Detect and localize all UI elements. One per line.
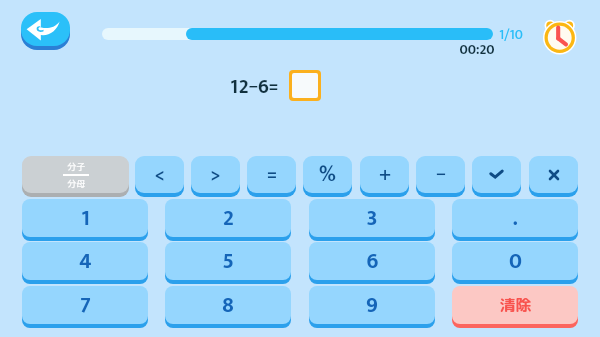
staticText: 4 <box>79 243 92 280</box>
staticText: − <box>436 157 446 192</box>
button[interactable]: . <box>452 199 578 241</box>
button[interactable]: Equals <box>247 156 296 197</box>
button[interactable]: 清除 <box>452 286 578 328</box>
staticText: 12−6= <box>230 70 278 103</box>
button[interactable]: Greater than <box>191 156 240 197</box>
button[interactable]: 3 <box>309 199 435 241</box>
button[interactable]: 6 <box>309 242 435 284</box>
button[interactable]: Correct <box>472 156 521 197</box>
staticText: . <box>512 200 518 237</box>
staticText: 1 <box>81 200 90 237</box>
button[interactable]: 0 <box>452 242 578 284</box>
staticText: 5 <box>222 243 234 280</box>
button[interactable]: Plus <box>360 156 409 197</box>
button[interactable]: Back <box>21 12 70 50</box>
button[interactable]: Answer <box>292 73 318 98</box>
staticText: 6 <box>366 243 379 280</box>
staticText: 0 <box>509 243 522 280</box>
button[interactable]: Minus <box>416 156 465 197</box>
staticText: 7 <box>80 287 91 324</box>
button[interactable]: Percent <box>303 156 352 197</box>
staticText: 2 <box>223 200 234 237</box>
button[interactable]: 9 <box>309 286 435 328</box>
staticText: 8 <box>222 287 234 324</box>
button[interactable]: 4 <box>22 242 148 284</box>
staticText: 1/10 <box>499 23 523 46</box>
button[interactable]: 7 <box>22 286 148 328</box>
staticText: % <box>319 157 336 192</box>
staticText: 3 <box>366 200 378 237</box>
button[interactable]: Fraction <box>22 156 129 197</box>
button[interactable]: 1 <box>22 199 148 241</box>
button[interactable]: 5 <box>165 242 291 284</box>
button[interactable]: 2 <box>165 199 291 241</box>
staticText: 9 <box>366 287 378 324</box>
staticText: 00:20 <box>459 38 495 61</box>
staticText: < <box>154 157 165 192</box>
button[interactable]: Wrong <box>529 156 578 197</box>
staticText: + <box>379 157 391 192</box>
button[interactable]: Less than <box>135 156 184 197</box>
staticText: = <box>267 157 277 192</box>
button[interactable]: Timer <box>540 14 580 56</box>
staticText: 分子 <box>67 160 86 173</box>
staticText: 分母 <box>67 177 86 190</box>
staticText: 清除 <box>499 294 532 316</box>
staticText: > <box>210 157 221 192</box>
button[interactable]: 8 <box>165 286 291 328</box>
